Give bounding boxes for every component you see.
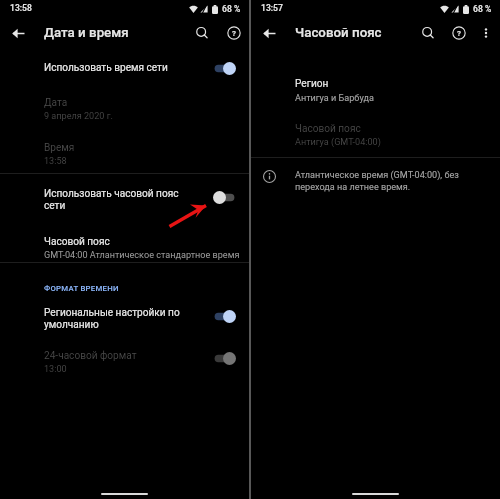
button[interactable]: Back bbox=[8, 23, 28, 43]
staticText: 68 % bbox=[473, 4, 492, 14]
button[interactable]: Help bbox=[446, 20, 472, 46]
staticText: 24-часовой формат bbox=[44, 348, 137, 362]
staticText: ФОРМАТ ВРЕМЕНИ bbox=[44, 284, 119, 293]
button[interactable]: Использовать часовой пояс сети bbox=[0, 187, 249, 217]
staticText: Дата bbox=[44, 95, 68, 108]
staticText: Часовой пояс bbox=[44, 235, 110, 248]
staticText: 13:58 bbox=[10, 3, 32, 13]
staticText: Антигуа и Барбуда bbox=[295, 90, 374, 104]
staticText: Антигуа (GMT-04:00) bbox=[295, 135, 381, 148]
staticText: 9 апреля 2020 г. bbox=[44, 108, 113, 122]
staticText: ? bbox=[232, 29, 236, 38]
button[interactable]: Региональные настройки по умолчанию bbox=[0, 306, 249, 336]
staticText: 13:57 bbox=[261, 3, 283, 13]
button[interactable]: More options bbox=[475, 22, 497, 44]
staticText: Использовать время сети bbox=[44, 62, 168, 74]
button[interactable]: Часовой пояс bbox=[295, 122, 500, 148]
button[interactable]: Часовой пояс bbox=[44, 235, 249, 261]
staticText: Часовой пояс bbox=[295, 25, 382, 41]
staticText: Дата и время bbox=[44, 25, 129, 41]
button[interactable]: Регион bbox=[295, 76, 500, 104]
staticText: GMT-04:00 Атлантическое стандартное врем… bbox=[44, 248, 240, 261]
button[interactable]: Back bbox=[259, 23, 279, 43]
staticText: 13:58 bbox=[44, 154, 67, 167]
button[interactable]: Search bbox=[189, 20, 215, 46]
staticText: Время bbox=[44, 141, 75, 154]
button[interactable]: Использовать время сети bbox=[0, 56, 249, 80]
button[interactable]: Дата bbox=[44, 95, 249, 122]
button[interactable]: 24-часовой формат bbox=[0, 348, 249, 378]
staticText: Атлантическое время (GMT-04:00), без пер… bbox=[295, 169, 470, 193]
button[interactable]: Help bbox=[221, 20, 247, 46]
staticText: Часовой пояс bbox=[295, 122, 361, 135]
staticText: 68 % bbox=[222, 4, 241, 14]
staticText: ? bbox=[457, 29, 461, 38]
staticText: Регион bbox=[295, 76, 329, 90]
staticText: Региональные настройки по умолчанию bbox=[44, 306, 180, 330]
button[interactable]: Search bbox=[415, 20, 441, 46]
staticText: 13:00 bbox=[44, 362, 67, 375]
button[interactable]: Время bbox=[44, 141, 249, 167]
staticText: Использовать часовой пояс сети bbox=[44, 187, 179, 211]
